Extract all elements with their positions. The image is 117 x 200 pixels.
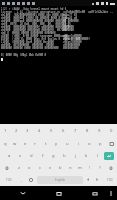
button[interactable]: More options (105, 186, 117, 200)
button[interactable]: r (30, 137, 40, 150)
button[interactable]: ⏵ (93, 174, 102, 186)
button[interactable]: 9 (93, 124, 105, 137)
staticText: f01.22 p0 (63, 16, 78, 19)
staticText: o (88, 141, 91, 147)
staticText: dr0 0 00000 00000 00000000 0000000 (1, 31, 56, 34)
button[interactable]: 1 (0, 124, 11, 137)
staticText: 4 (38, 128, 41, 134)
staticText: ⏵ (96, 178, 99, 182)
button[interactable]: 2 (11, 124, 22, 137)
button[interactable]: q (0, 137, 10, 150)
staticText: v0000000000 (63, 43, 81, 46)
staticText: d (30, 153, 33, 159)
button[interactable]: t (40, 137, 51, 150)
button[interactable]: ⏴ (84, 174, 93, 186)
staticText: b (59, 165, 62, 171)
staticText: k (85, 153, 88, 159)
staticText: 00 0000000 (63, 19, 79, 22)
staticText: , (21, 177, 23, 183)
staticText: v (49, 165, 52, 171)
button[interactable]: ?123 (102, 174, 117, 186)
staticText: 0| 0000 00g /00g1 0bb 0c000 0 (1, 53, 47, 57)
button[interactable]: 0 (105, 124, 117, 137)
button[interactable]: 4 (33, 124, 45, 137)
button[interactable]: p (95, 137, 106, 150)
button[interactable]: , (17, 174, 26, 186)
staticText: v00gv700000 (63, 37, 81, 40)
button[interactable]: Shift (0, 162, 13, 174)
button[interactable]: ? (95, 162, 105, 174)
staticText: w (13, 141, 17, 147)
button[interactable]: v (45, 162, 55, 174)
staticText: 9 (98, 128, 101, 134)
staticText: n (69, 165, 72, 171)
staticText: 01000 /j000'0+ 0000 00gv 0j0 0gv1gv 0 00… (1, 37, 90, 40)
button[interactable]: 7 (69, 124, 81, 137)
button[interactable]: ! (85, 162, 95, 174)
button[interactable]: h (59, 150, 70, 162)
button[interactable]: g (48, 150, 59, 162)
staticText: z (18, 165, 20, 171)
staticText: dr00 0070. 10_0p0. 000. 000. 00. 0000000 (1, 22, 67, 25)
button[interactable]: Enter (104, 152, 114, 160)
button[interactable]: s (15, 150, 26, 162)
button[interactable]: u (62, 137, 73, 150)
button[interactable]: Shift right (105, 162, 117, 174)
button[interactable]: Backspace (106, 137, 117, 150)
button[interactable]: n (65, 162, 75, 174)
button[interactable]: 5 (45, 124, 57, 137)
staticText: ?123 (6, 178, 12, 182)
staticText: 2 (15, 128, 18, 134)
button[interactable]: English (37, 176, 83, 184)
staticText: p (99, 141, 102, 147)
staticText: d1000 /j000' 0/00 00000 tavgvmmv 0000gvm… (1, 34, 68, 37)
button[interactable]: i (73, 137, 84, 150)
button[interactable]: Home (44, 186, 74, 200)
button[interactable]: o (84, 137, 95, 150)
staticText: 12 05 (63, 22, 71, 25)
button[interactable]: x (24, 162, 35, 174)
button[interactable]: w (10, 137, 20, 150)
staticText: j (75, 153, 77, 159)
button[interactable]: f (37, 150, 48, 162)
button[interactable]: Emoji (26, 174, 36, 186)
staticText: a (8, 153, 11, 159)
staticText: English (55, 178, 66, 182)
staticText: 3 (26, 128, 29, 134)
staticText: h (63, 153, 66, 159)
staticText: ?123 (107, 178, 113, 182)
button[interactable]: c (35, 162, 45, 174)
button[interactable]: Recents (80, 186, 110, 200)
button[interactable]: d (26, 150, 37, 162)
staticText: s (19, 153, 22, 159)
staticText: g (52, 153, 55, 159)
button[interactable]: a (4, 150, 15, 162)
staticText: 1|2| > /#### ./bin_kernel_mount_mount_hd… (1, 7, 67, 10)
button[interactable]: e (20, 137, 30, 150)
button[interactable]: y (51, 137, 62, 150)
button[interactable]: l (92, 150, 103, 162)
staticText: u (66, 141, 69, 147)
staticText: dr1000 /0#200000000001 0000.#0v 0000.#0w… (1, 13, 70, 16)
staticText: 0070000 (63, 28, 74, 31)
button[interactable]: Back (8, 186, 38, 200)
staticText: 0000000000 (63, 46, 79, 49)
button[interactable]: j (70, 150, 81, 162)
staticText: x (28, 165, 31, 171)
button[interactable]: 8 (81, 124, 93, 137)
button[interactable]: 6 (57, 124, 69, 137)
button[interactable]: k (81, 150, 92, 162)
button[interactable]: ?123 (0, 174, 17, 186)
staticText: v00gv7g00000 (63, 34, 82, 37)
staticText: 0000000 000000 0000 0000000 000000000 (1, 46, 59, 49)
button[interactable]: z (13, 162, 24, 174)
staticText: t (45, 141, 47, 147)
button[interactable]: b (55, 162, 65, 174)
button[interactable]: 3 (22, 124, 33, 137)
staticText: i (78, 141, 80, 147)
staticText: ? (99, 165, 101, 171)
staticText: m (78, 165, 82, 171)
button[interactable]: m (75, 162, 85, 174)
staticText: dr0000 00000000 000000d0 000000f0 _00700… (1, 28, 68, 31)
staticText: dr0000 0000000_10000_00_000000 0000_010v… (1, 16, 70, 19)
